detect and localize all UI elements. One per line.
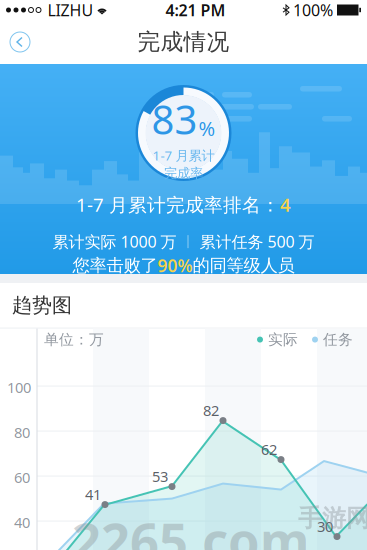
staticText: 您率击败了 (72, 255, 157, 276)
staticText: 完成率 (164, 165, 203, 182)
staticText: 60 (14, 468, 30, 487)
staticText: 80 (14, 423, 30, 442)
staticText: 83 (151, 92, 197, 145)
staticText: 4 (280, 192, 291, 217)
staticText: 100% (293, 0, 333, 21)
staticText: 完成情况 (137, 28, 229, 56)
staticText: 单位：万 (44, 331, 104, 349)
staticText: 30 (317, 517, 333, 536)
staticText: 100 (7, 378, 31, 397)
staticText: 趋势图 (12, 293, 72, 318)
staticText: 2265.com (72, 507, 309, 550)
staticText: 53 (152, 467, 168, 486)
staticText: 4:21 PM (165, 0, 225, 21)
staticText: 累计任务 500 万 (199, 231, 314, 252)
staticText: 62 (261, 440, 277, 459)
staticText: 实际 (268, 331, 298, 349)
staticText: 的同等级人员 (192, 255, 294, 276)
staticText: 40 (14, 513, 30, 532)
button[interactable]: Back (0, 22, 40, 62)
staticText: 41 (85, 485, 101, 504)
staticText: 手游网 (298, 504, 367, 533)
staticText: 90% (157, 254, 192, 277)
staticText: LIZHU (43, 0, 93, 21)
staticText: 1-7 月累计完成率排名： (76, 192, 280, 217)
staticText: % (198, 115, 215, 142)
staticText: 任务 (323, 331, 353, 349)
staticText: 82 (203, 401, 219, 420)
staticText: 1-7 月累计 (152, 146, 214, 164)
staticText: 累计实际 1000 万 (52, 231, 176, 252)
